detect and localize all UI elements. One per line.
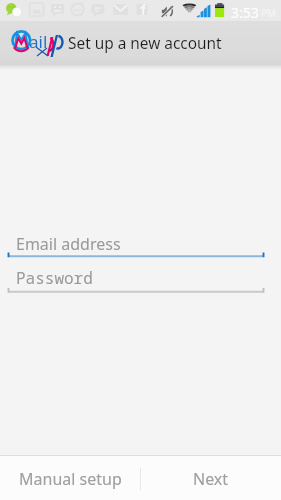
button[interactable]: MailDroid home — [0, 21, 66, 64]
staticText: 3:53 — [231, 3, 259, 22]
staticText: PM — [261, 6, 277, 20]
staticText: Manual setup — [19, 468, 122, 490]
staticText: Next — [193, 468, 229, 490]
staticText: ail — [29, 30, 48, 53]
staticText: Set up a new account — [68, 33, 222, 54]
staticText: Password — [16, 267, 93, 289]
button[interactable]: Manual setup — [0, 456, 140, 500]
staticText: Email address — [16, 233, 121, 255]
button[interactable]: Next — [141, 456, 281, 500]
